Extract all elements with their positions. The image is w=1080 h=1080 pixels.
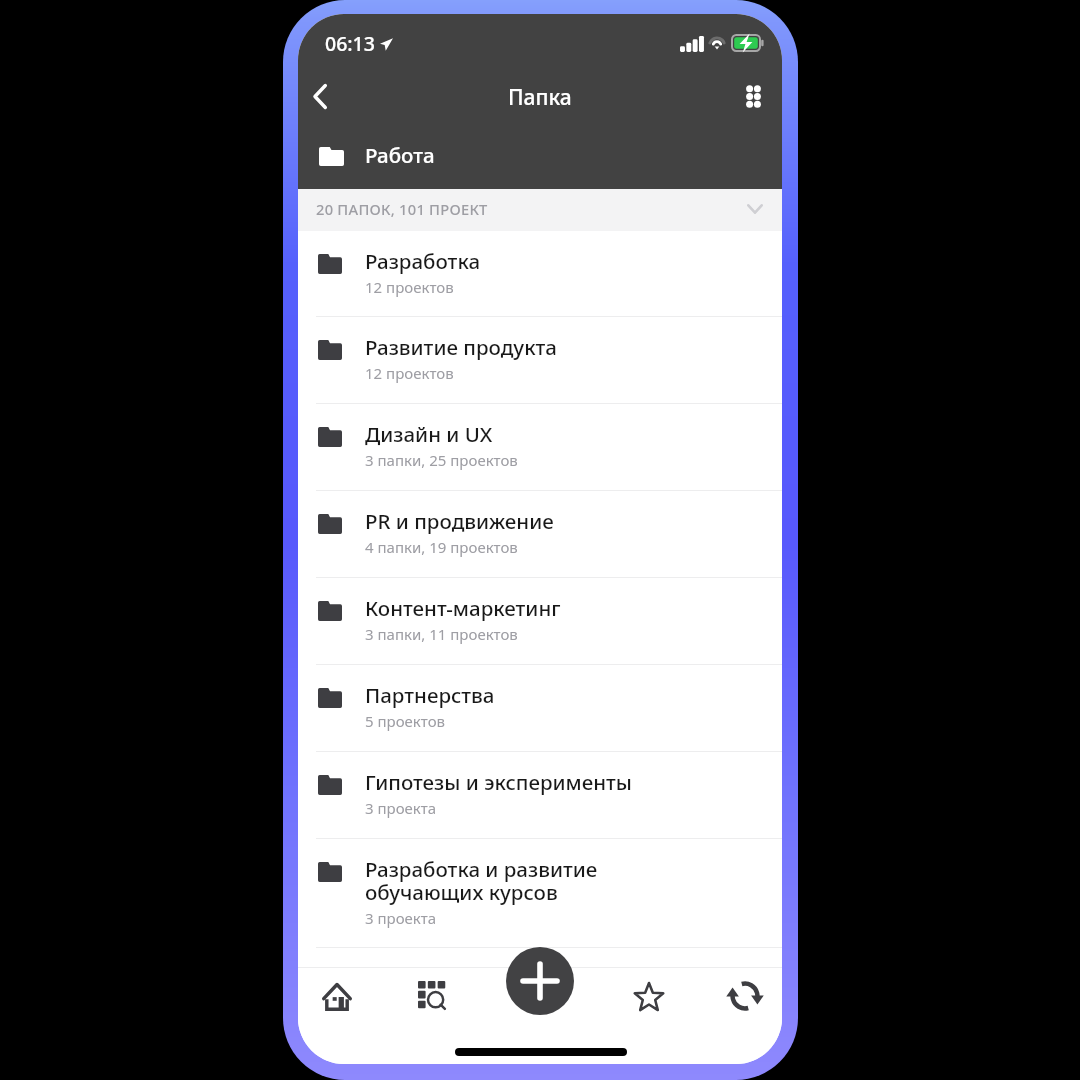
staticText: 06:13 [325,30,375,57]
button[interactable]: Разработка [298,231,782,316]
button[interactable]: Развитие продукта [298,317,782,403]
staticText: Контент-маркетинг [365,594,561,622]
staticText: Партнерства [365,681,495,709]
staticText: Разработка [365,247,481,275]
staticText: Гипотезы и эксперименты [365,768,632,796]
staticText: Работа [365,141,435,169]
staticText: 20 ПАПОК, 101 ПРОЕКТ [316,199,488,219]
button[interactable]: Search projects [404,967,460,1023]
button[interactable]: Add [506,947,574,1015]
staticText: PR и продвижение [365,507,554,535]
staticText: 12 проектов [365,277,454,297]
staticText: 5 проектов [365,711,446,731]
staticText: Разработка и развитие обучающих курсов [365,855,598,906]
button[interactable]: PR и продвижение [298,491,782,577]
button[interactable]: 20 ПАПОК, 101 ПРОЕКТ [298,189,782,231]
staticText: 3 папки, 25 проектов [365,450,518,470]
staticText: 3 проекта [365,908,437,928]
staticText: 4 папки, 19 проектов [365,537,518,557]
staticText: Развитие продукта [365,333,557,361]
button[interactable]: Партнерства [298,665,782,751]
button[interactable]: Работа [298,132,782,181]
staticText: 12 проектов [365,363,454,383]
button[interactable]: Разработка и развитие обучающих курсов [298,839,782,947]
button[interactable]: More options [731,74,775,118]
button[interactable]: Гипотезы и эксперименты [298,752,782,838]
staticText: Дизайн и UX [365,420,493,448]
staticText: Папка [508,83,572,112]
staticText: 3 папки, 11 проектов [365,624,518,644]
button[interactable]: Дизайн и UX [298,404,782,490]
button[interactable]: Home [309,969,365,1025]
button[interactable]: Back [298,74,342,118]
staticText: 3 проекта [365,798,437,818]
button[interactable]: Favorites [621,968,677,1024]
button[interactable]: Sync [717,968,773,1024]
button[interactable]: Контент-маркетинг [298,578,782,664]
